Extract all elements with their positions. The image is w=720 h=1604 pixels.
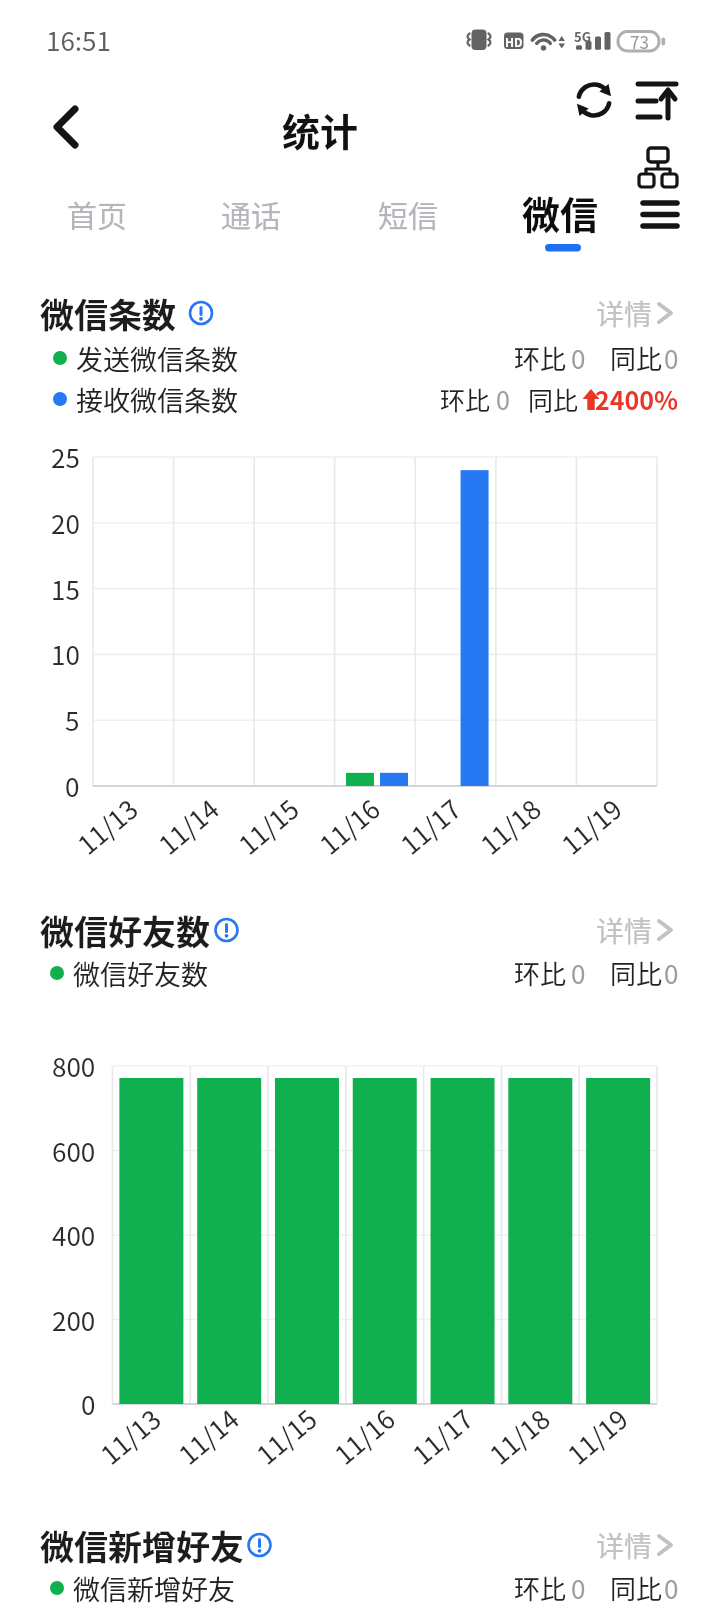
staticText: 微信条数 bbox=[40, 289, 176, 338]
staticText: 0 bbox=[664, 1569, 679, 1604]
staticText: 环比 bbox=[514, 339, 567, 377]
staticText: 接收微信条数 bbox=[76, 380, 238, 419]
staticText: 环比 bbox=[514, 954, 567, 992]
staticText: 200 bbox=[52, 1301, 96, 1339]
staticText: 同比 bbox=[610, 1569, 663, 1604]
staticText: 同比 bbox=[610, 954, 663, 992]
staticText: 11/19 bbox=[553, 790, 629, 862]
staticText: 11/13 bbox=[92, 1400, 168, 1472]
staticText: 400 bbox=[52, 1216, 96, 1254]
staticText: 25 bbox=[51, 438, 80, 476]
staticText: 5G bbox=[574, 27, 591, 46]
staticText: 通话 bbox=[221, 192, 281, 235]
staticText: 微信好友数 bbox=[40, 906, 210, 955]
staticText: 800 bbox=[52, 1047, 96, 1085]
staticText: 0 bbox=[571, 339, 586, 377]
staticText: 11/16 bbox=[326, 1400, 402, 1472]
staticText: 20 bbox=[51, 504, 80, 542]
staticText: 发送微信条数 bbox=[76, 339, 238, 378]
staticText: 0 bbox=[571, 1569, 586, 1604]
staticText: 5 bbox=[65, 701, 80, 739]
staticText: 15 bbox=[51, 570, 80, 608]
staticText: 11/17 bbox=[404, 1400, 480, 1472]
staticText: 11/15 bbox=[230, 790, 306, 862]
staticText: 10 bbox=[51, 635, 80, 673]
staticText: 同比 bbox=[610, 339, 663, 377]
staticText: 600 bbox=[52, 1132, 96, 1170]
staticText: 详情 bbox=[596, 1525, 653, 1566]
staticText: 73 bbox=[630, 29, 649, 54]
staticText: 微信 bbox=[522, 185, 599, 240]
staticText: 0 bbox=[571, 954, 586, 992]
staticText: 0 bbox=[496, 381, 510, 417]
staticText: 11/14 bbox=[150, 790, 226, 862]
staticText: 11/13 bbox=[69, 790, 145, 862]
staticText: 短信 bbox=[378, 192, 438, 235]
staticText: 详情 bbox=[596, 910, 653, 951]
staticText: 微信新增好友 bbox=[40, 1521, 244, 1570]
staticText: 微信新增好友 bbox=[73, 1569, 235, 1604]
staticText: 环比 bbox=[440, 381, 491, 417]
staticText: 11/18 bbox=[472, 790, 548, 862]
staticText: 11/14 bbox=[170, 1400, 246, 1472]
staticText: 11/17 bbox=[392, 790, 468, 862]
staticText: 2400% bbox=[595, 381, 679, 417]
staticText: 0 bbox=[664, 954, 679, 992]
staticText: 环比 bbox=[514, 1569, 567, 1604]
staticText: 0 bbox=[81, 1385, 96, 1423]
staticText: 统计 bbox=[282, 102, 359, 157]
staticText: 11/19 bbox=[559, 1400, 635, 1472]
staticText: 首页 bbox=[67, 192, 127, 235]
staticText: 微信好友数 bbox=[73, 954, 208, 993]
staticText: 11/16 bbox=[311, 790, 387, 862]
staticText: 同比 bbox=[528, 381, 579, 417]
staticText: 16:51 bbox=[46, 21, 111, 59]
staticText: HD bbox=[505, 33, 523, 50]
staticText: 11/18 bbox=[481, 1400, 557, 1472]
staticText: 11/15 bbox=[248, 1400, 324, 1472]
staticText: 0 bbox=[65, 767, 80, 805]
staticText: 详情 bbox=[596, 293, 653, 334]
staticText: 0 bbox=[664, 339, 679, 377]
